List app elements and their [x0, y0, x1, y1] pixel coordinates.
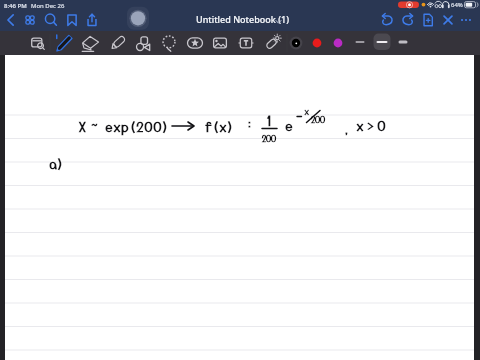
button[interactable]: More options — [457, 11, 475, 29]
button[interactable]: Medium stroke — [373, 33, 391, 53]
button[interactable]: Highlighter — [107, 32, 129, 54]
button[interactable]: Search — [42, 11, 60, 29]
button[interactable] — [5, 55, 474, 360]
button[interactable]: Pages — [21, 11, 39, 29]
button[interactable]: Thick stroke — [394, 33, 412, 53]
button[interactable]: Purple colour — [329, 34, 347, 52]
button[interactable]: Zoom — [26, 32, 48, 54]
button[interactable]: Close — [439, 11, 457, 29]
staticText: 8:46 PM — [4, 2, 27, 10]
button[interactable]: Shapes — [133, 32, 155, 54]
button[interactable]: Black colour — [287, 34, 305, 52]
button[interactable]: Share — [83, 11, 101, 29]
button[interactable]: Lasso — [158, 32, 180, 54]
staticText: Untitled Notebook (1) — [196, 13, 289, 25]
button[interactable]: Pen — [53, 32, 75, 54]
button[interactable]: Redo — [399, 11, 417, 29]
button[interactable]: Red colour — [308, 34, 326, 52]
button[interactable]: Back — [2, 11, 20, 29]
button[interactable]: Eraser — [80, 32, 102, 54]
button[interactable]: Thin stroke — [351, 33, 369, 53]
button[interactable]: Text box — [235, 32, 257, 54]
staticText: 64% — [451, 1, 463, 9]
button[interactable]: Add page — [419, 11, 437, 29]
button[interactable]: Magic pen — [261, 32, 283, 54]
button[interactable]: Image — [209, 32, 231, 54]
button[interactable]: Stickers — [184, 32, 206, 54]
button[interactable]: Undo — [378, 11, 396, 29]
button[interactable]: Bookmark — [63, 11, 81, 29]
staticText: Mon Dec 26 — [31, 2, 65, 10]
